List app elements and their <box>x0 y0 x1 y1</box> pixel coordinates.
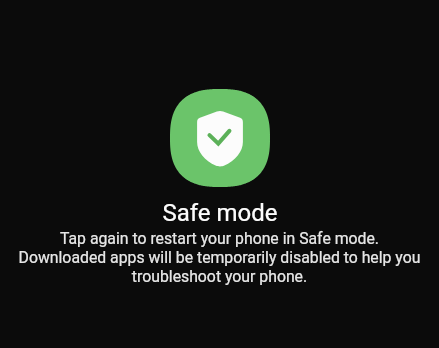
button[interactable]: Safe mode <box>170 89 270 187</box>
staticText: Safe mode <box>162 199 278 227</box>
staticText: Tap again to restart your phone in Safe … <box>0 229 439 286</box>
